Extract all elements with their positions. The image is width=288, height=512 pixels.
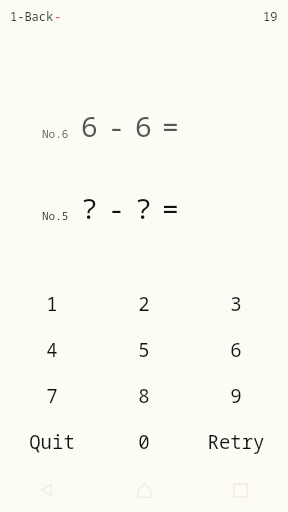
staticText: No.6 <box>42 126 69 141</box>
staticText: 19 <box>263 8 278 24</box>
staticText: = <box>162 189 179 227</box>
staticText: 7 <box>46 383 58 409</box>
staticText: - <box>108 107 125 145</box>
staticText: = <box>162 107 179 145</box>
button[interactable]: 9 <box>190 373 282 419</box>
button[interactable]: Quit <box>6 419 98 465</box>
button[interactable]: 2 <box>98 281 190 327</box>
staticText: 6 <box>230 337 242 363</box>
staticText: 3 <box>230 291 242 317</box>
staticText: 6 <box>135 107 152 145</box>
staticText: No.5 <box>42 208 69 223</box>
staticText: 1-Back <box>10 8 54 24</box>
button[interactable]: 5 <box>98 327 190 373</box>
staticText: 4 <box>46 337 58 363</box>
staticText: - <box>54 8 62 24</box>
staticText: 2 <box>138 291 150 317</box>
staticText: 8 <box>138 383 150 409</box>
staticText: Quit <box>29 429 75 455</box>
staticText: 0 <box>138 429 150 455</box>
button[interactable]: 3 <box>190 281 282 327</box>
staticText: 1 <box>46 291 58 317</box>
staticText: 6 <box>81 107 98 145</box>
button[interactable]: 8 <box>98 373 190 419</box>
button[interactable]: Retry <box>190 419 282 465</box>
staticText: ? <box>135 189 152 227</box>
button[interactable]: 0 <box>98 419 190 465</box>
staticText: Retry <box>207 429 265 455</box>
staticText: ? <box>81 189 98 227</box>
staticText: 9 <box>230 383 242 409</box>
button[interactable]: 4 <box>6 327 98 373</box>
button[interactable]: 1 <box>6 281 98 327</box>
button[interactable]: 6 <box>190 327 282 373</box>
button[interactable]: 7 <box>6 373 98 419</box>
staticText: - <box>108 189 125 227</box>
staticText: 5 <box>138 337 150 363</box>
